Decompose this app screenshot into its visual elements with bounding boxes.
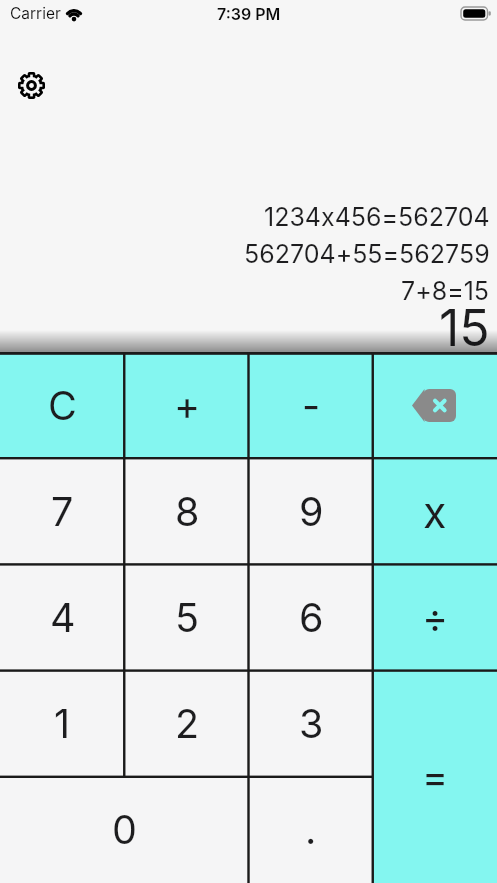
button[interactable] (18, 72, 45, 99)
button[interactable]: + (125, 352, 249, 459)
staticText: 9 (299, 488, 324, 536)
button[interactable]: ÷ (373, 565, 497, 671)
staticText: - (302, 382, 321, 430)
staticText: 6 (299, 594, 324, 642)
button[interactable]: C (0, 352, 125, 459)
staticText: Carrier (10, 4, 61, 23)
button[interactable]: 1 (0, 671, 125, 777)
staticText: ÷ (422, 594, 449, 642)
button[interactable]: - (249, 352, 373, 459)
staticText: + (174, 382, 201, 430)
button[interactable]: . (249, 777, 373, 883)
staticText: 8 (175, 488, 200, 536)
staticText: = (422, 753, 449, 801)
staticText: 2 (175, 700, 200, 748)
staticText: 7:39 PM (217, 4, 281, 23)
button[interactable]: 7 (0, 459, 125, 565)
button[interactable]: 8 (125, 459, 249, 565)
staticText: . (305, 806, 317, 854)
button[interactable]: x (373, 459, 497, 565)
button[interactable]: 2 (125, 671, 249, 777)
staticText: 7+8=15 (401, 276, 490, 306)
button[interactable]: 3 (249, 671, 373, 777)
button[interactable]: 9 (249, 459, 373, 565)
staticText: 3 (299, 700, 324, 748)
staticText: 562704+55=562759 (244, 239, 490, 269)
staticText: 0 (112, 806, 137, 854)
staticText: 1 (54, 700, 71, 748)
staticText: x (423, 486, 447, 538)
staticText: C (48, 382, 77, 430)
staticText: 15 (439, 298, 490, 358)
button[interactable] (373, 352, 497, 459)
button[interactable]: = (373, 671, 497, 883)
button[interactable]: 0 (0, 777, 249, 883)
staticText: 4 (50, 594, 76, 642)
button[interactable]: 5 (125, 565, 249, 671)
button[interactable]: 6 (249, 565, 373, 671)
staticText: 5 (175, 594, 200, 642)
staticText: 7 (51, 488, 74, 536)
button[interactable]: 4 (0, 565, 125, 671)
staticText: 1234x456=562704 (264, 202, 490, 232)
